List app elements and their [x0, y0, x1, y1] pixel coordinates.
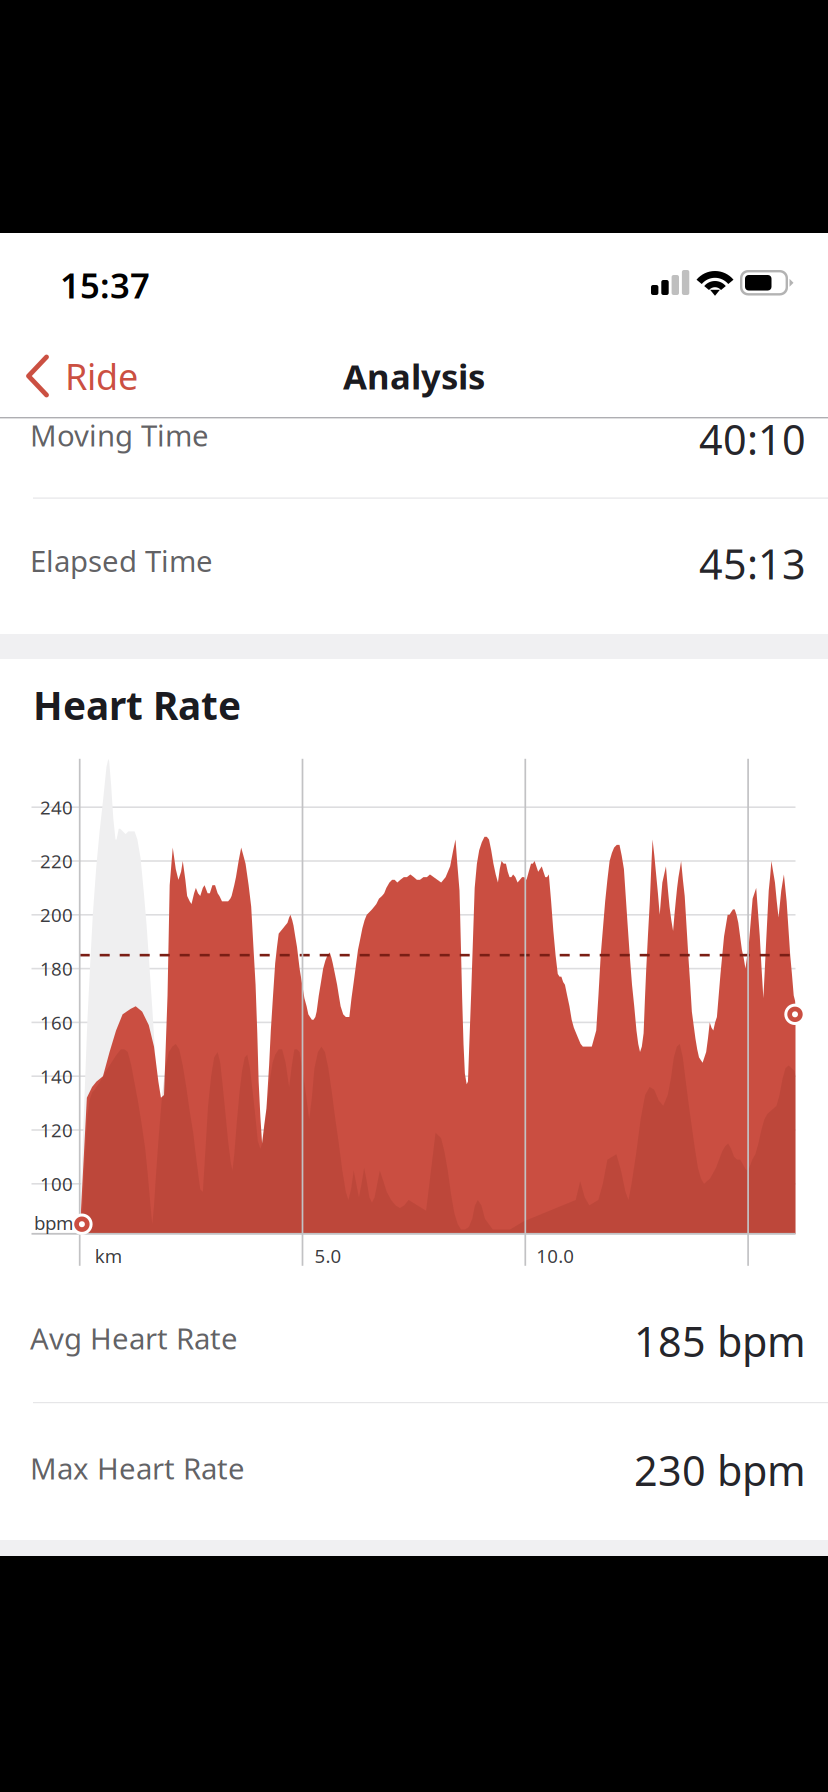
staticText: 180	[40, 956, 73, 981]
staticText: Heart Rate	[33, 679, 241, 731]
staticText: 140	[40, 1064, 73, 1089]
button[interactable]: Moving Time	[0, 418, 828, 497]
staticText: 160	[40, 1010, 73, 1035]
button[interactable]: Elapsed Time	[0, 498, 828, 632]
button[interactable]: Max Heart Rate	[0, 1403, 828, 1540]
staticText: km	[95, 1243, 122, 1268]
staticText: Moving Time	[30, 415, 209, 454]
staticText: 220	[40, 849, 73, 873]
staticText: 40:10	[699, 412, 806, 466]
staticText: 120	[40, 1118, 73, 1142]
staticText: bpm	[34, 1210, 73, 1235]
staticText: 230 bpm	[634, 1443, 806, 1497]
staticText: 200	[40, 902, 73, 927]
staticText: 185 bpm	[634, 1314, 806, 1368]
staticText: Ride	[65, 352, 138, 400]
staticText: 45:13	[699, 536, 806, 591]
staticText: Max Heart Rate	[30, 1448, 245, 1487]
staticText: 100	[40, 1171, 73, 1196]
button[interactable]: Avg Heart Rate	[0, 1296, 828, 1402]
staticText: Analysis	[343, 353, 485, 399]
staticText: 10.0	[536, 1243, 574, 1268]
staticText: 5.0	[314, 1243, 341, 1268]
staticText: 15:37	[60, 262, 150, 308]
button[interactable]: Ride	[18, 340, 178, 412]
staticText: Elapsed Time	[30, 541, 213, 580]
staticText: 240	[40, 795, 73, 820]
staticText: Avg Heart Rate	[30, 1318, 238, 1357]
